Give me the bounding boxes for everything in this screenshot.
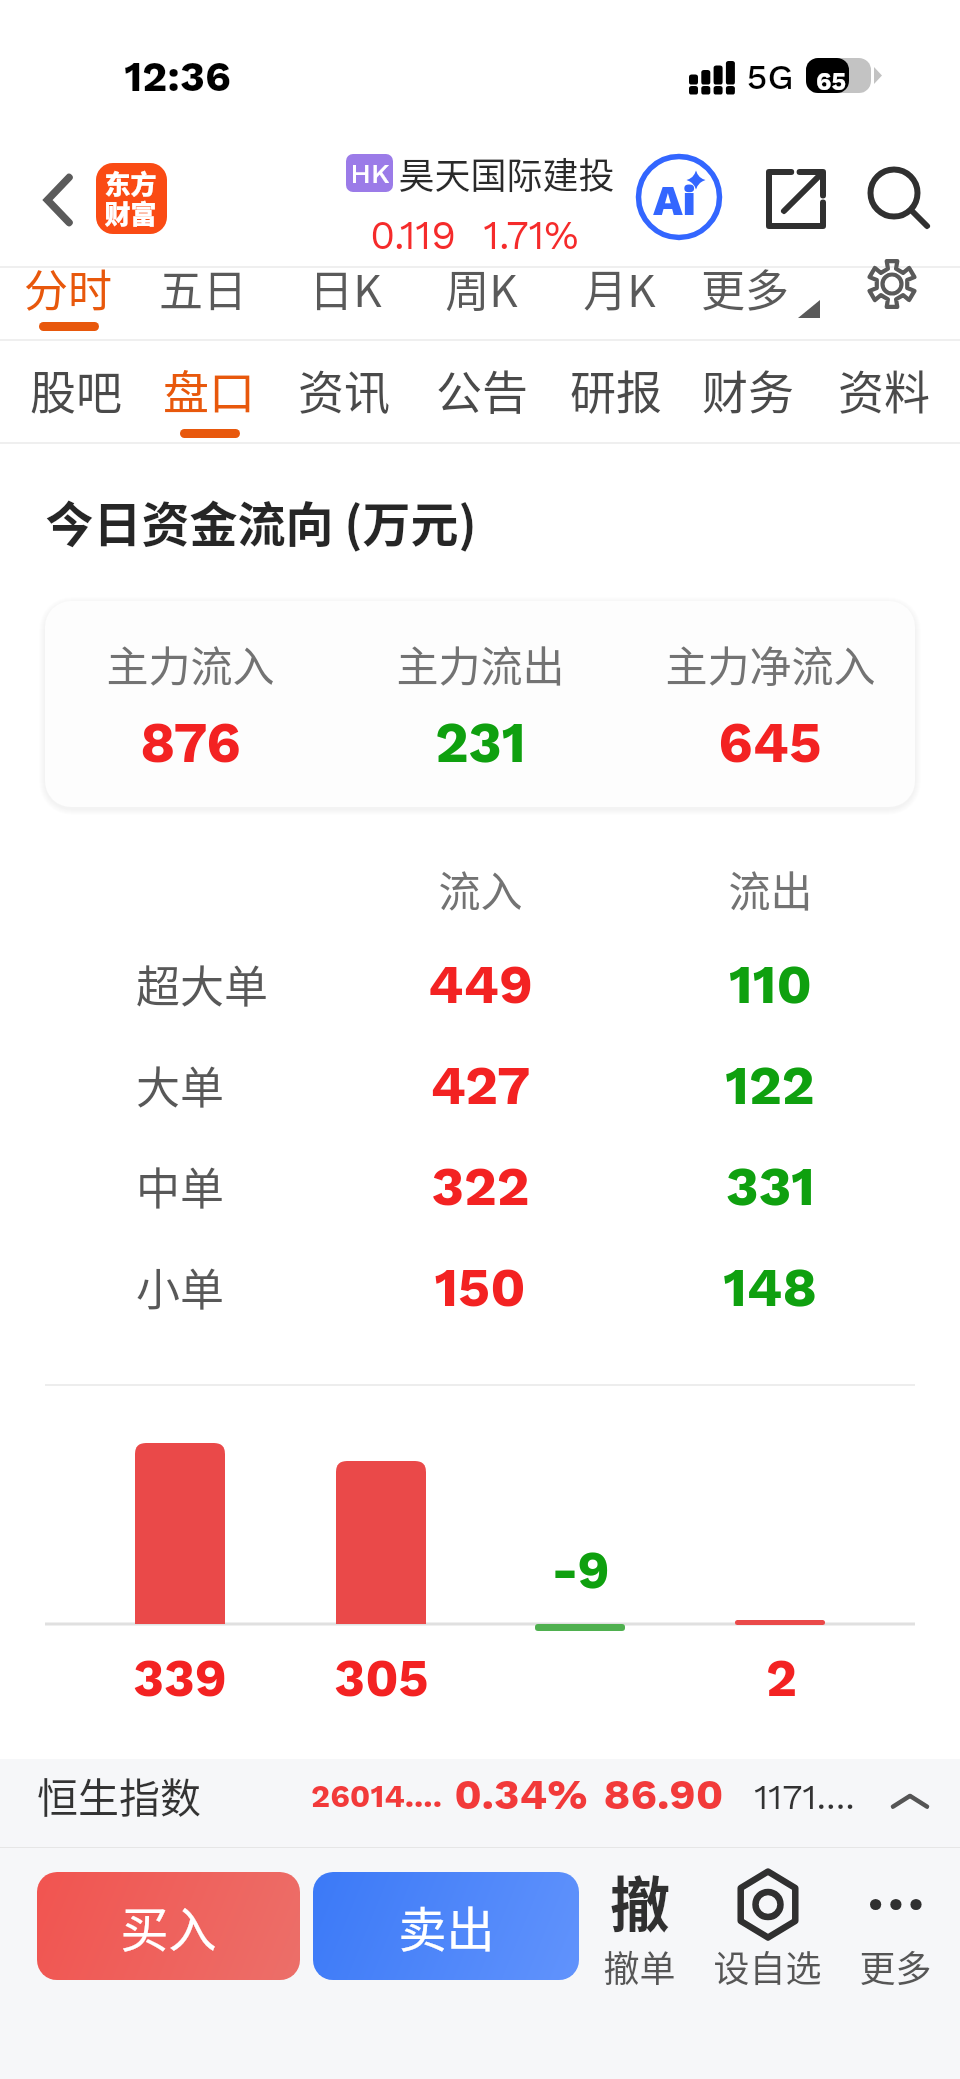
button[interactable]: [45, 1237, 915, 1338]
staticText: 日K: [309, 256, 382, 320]
button[interactable]: 五日: [145, 268, 261, 340]
staticText: 卖出: [398, 1891, 495, 1961]
staticText: 5G: [746, 56, 794, 98]
button[interactable]: 主力流出: [335, 601, 625, 807]
button[interactable]: Expand index bar: [880, 1772, 940, 1832]
staticText: 流出: [728, 858, 813, 919]
staticText: 449: [428, 952, 533, 1017]
button[interactable]: [45, 1035, 915, 1136]
staticText: 财务: [702, 356, 794, 423]
staticText: 更多: [701, 256, 789, 320]
button[interactable]: East Money home: [96, 163, 167, 234]
button[interactable]: 日K: [287, 268, 403, 340]
button[interactable]: 卖出: [313, 1872, 579, 1980]
button[interactable]: [831, 1866, 959, 1994]
staticText: 主力流出: [396, 633, 565, 694]
staticText: 1.71%: [483, 212, 579, 259]
button[interactable]: Settings: [857, 268, 927, 340]
staticText: 资料: [838, 356, 930, 423]
staticText: 分时: [24, 256, 112, 320]
button[interactable]: 资讯: [282, 341, 406, 443]
button[interactable]: [0, 1759, 600, 1847]
button[interactable]: [45, 1136, 915, 1237]
staticText: 财富: [104, 194, 157, 232]
staticText: 五日: [159, 256, 247, 320]
staticText: 65: [816, 67, 846, 96]
staticText: 恒生指数: [37, 1765, 201, 1824]
button[interactable]: 公告: [420, 341, 544, 443]
staticText: 26014....: [311, 1777, 442, 1815]
button[interactable]: 主力净流入: [625, 601, 915, 807]
staticText: 339: [133, 1648, 227, 1709]
staticText: 110: [729, 952, 812, 1017]
staticText: 流入: [438, 858, 523, 919]
button[interactable]: 更多: [690, 268, 830, 340]
staticText: 12:36: [124, 52, 231, 101]
staticText: 资讯: [298, 356, 390, 423]
button[interactable]: [703, 1866, 831, 1994]
button[interactable]: 资料: [822, 341, 946, 443]
staticText: 1171....: [754, 1776, 855, 1818]
staticText: 150: [434, 1255, 526, 1320]
staticText: 公告: [436, 356, 528, 423]
staticText: 盘口: [163, 356, 255, 423]
button[interactable]: 分时: [10, 268, 126, 340]
staticText: -9: [551, 1540, 610, 1601]
staticText: 昊天国际建投: [398, 147, 615, 199]
staticText: 更多: [859, 1940, 932, 1988]
button[interactable]: Back: [24, 166, 94, 236]
button[interactable]: 股吧: [14, 341, 138, 443]
staticText: 撤: [610, 1857, 670, 1944]
staticText: 645: [718, 710, 822, 776]
staticText: 305: [334, 1648, 429, 1709]
staticText: 中单: [136, 1154, 224, 1218]
staticText: 0.119: [370, 212, 456, 259]
button[interactable]: 主力流入: [45, 601, 335, 807]
button[interactable]: 月K: [561, 268, 677, 340]
staticText: 买入: [120, 1891, 217, 1961]
staticText: 撤单: [603, 1940, 676, 1988]
button[interactable]: Share: [754, 157, 838, 241]
staticText: 0.34%: [454, 1769, 588, 1819]
button[interactable]: 盘口: [147, 341, 271, 443]
staticText: 周K: [445, 256, 518, 320]
button[interactable]: AI assistant: [636, 154, 722, 240]
button[interactable]: 研报: [554, 341, 678, 443]
staticText: 超大单: [136, 952, 268, 1016]
staticText: 148: [723, 1255, 817, 1320]
button[interactable]: 买入: [37, 1872, 300, 1980]
staticText: 设自选: [713, 1940, 822, 1988]
staticText: 331: [726, 1154, 815, 1219]
staticText: 427: [430, 1053, 531, 1118]
staticText: 主力净流入: [665, 633, 876, 694]
staticText: 东方: [104, 164, 157, 202]
staticText: 股吧: [30, 356, 122, 423]
staticText: HK: [350, 157, 390, 190]
staticText: 主力流入: [106, 633, 275, 694]
staticText: 2: [766, 1648, 797, 1709]
button[interactable]: [575, 1866, 703, 1994]
staticText: 876: [140, 710, 241, 776]
staticText: 231: [435, 710, 526, 776]
staticText: 86.90: [603, 1769, 724, 1819]
button[interactable]: 周K: [423, 268, 539, 340]
button[interactable]: 财务: [686, 341, 810, 443]
staticText: 322: [431, 1154, 530, 1219]
staticText: 大单: [136, 1053, 224, 1117]
staticText: 今日资金流向 (万元): [45, 486, 477, 556]
staticText: Ai: [653, 175, 696, 225]
staticText: 月K: [583, 256, 656, 320]
staticText: 122: [725, 1053, 815, 1118]
staticText: 小单: [136, 1255, 224, 1319]
button[interactable]: Search: [857, 156, 941, 240]
button[interactable]: [45, 934, 915, 1035]
staticText: 研报: [570, 356, 662, 423]
